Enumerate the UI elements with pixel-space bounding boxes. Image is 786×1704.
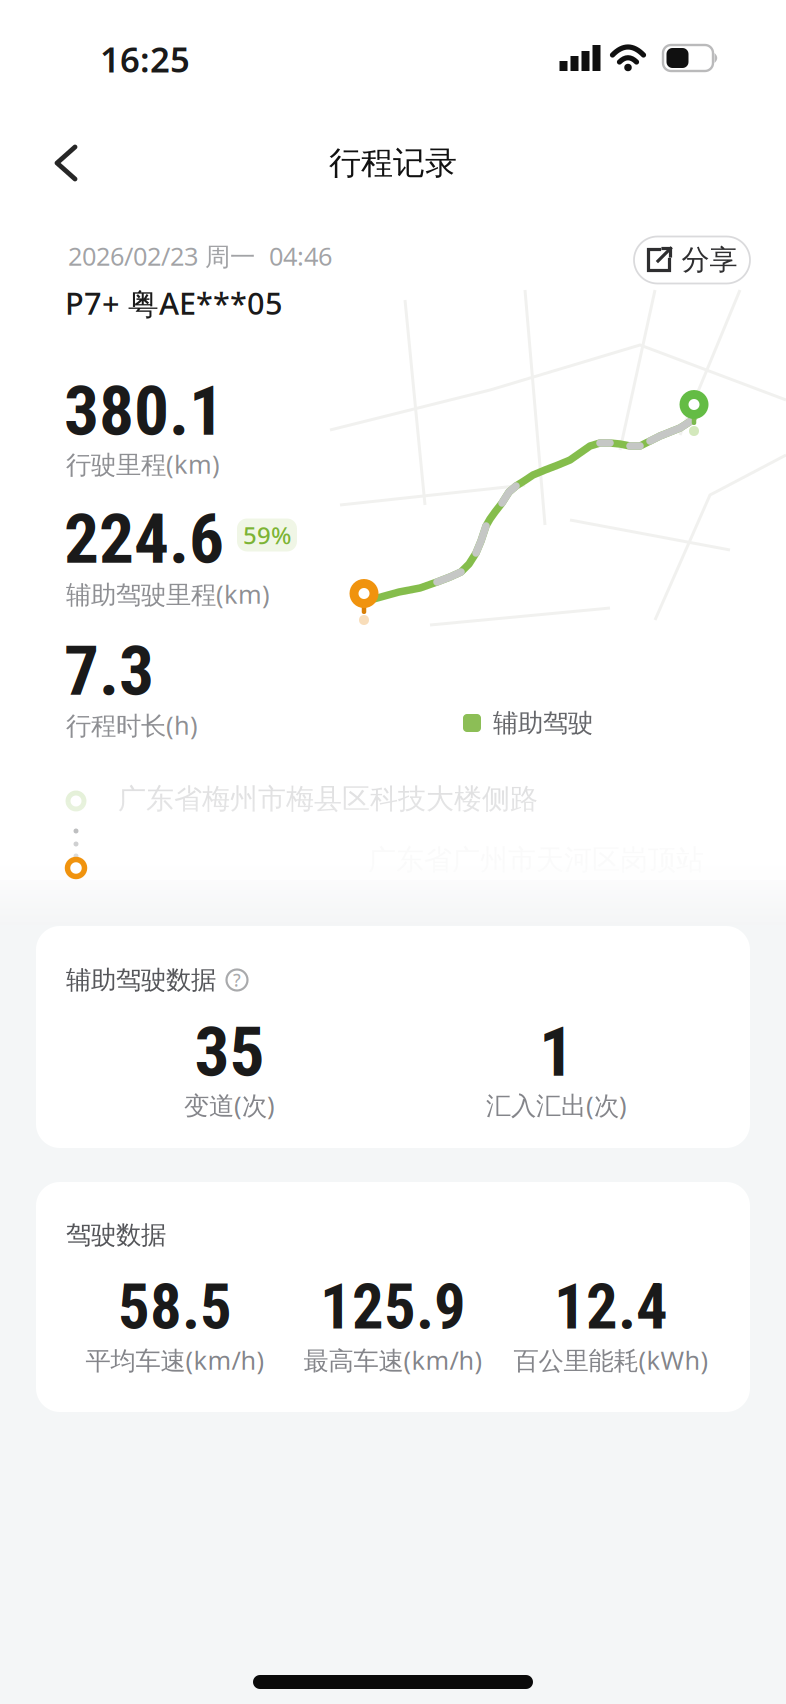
- staticText: 380.1: [64, 370, 224, 452]
- staticText: 224.6: [64, 498, 224, 580]
- staticText: ?: [233, 968, 241, 991]
- staticText: 2026/02/23 周一 04:46: [68, 239, 332, 273]
- staticText: 汇入汇出(次): [486, 1088, 627, 1122]
- staticText: 35: [194, 1011, 264, 1093]
- staticText: 变道(次): [184, 1088, 275, 1122]
- staticText: 最高车速(km/h): [303, 1343, 482, 1377]
- staticText: 平均车速(km/h): [85, 1343, 264, 1377]
- staticText: 12.4: [554, 1270, 668, 1344]
- staticText: 辅助驾驶数据: [66, 964, 216, 995]
- button[interactable]: 说明: [226, 969, 248, 991]
- button[interactable]: Back: [39, 130, 93, 196]
- staticText: 行程时长(h): [66, 708, 198, 742]
- staticText: 百公里能耗(kWh): [513, 1343, 708, 1377]
- staticText: 辅助驾驶: [493, 707, 593, 738]
- staticText: 分享: [681, 243, 737, 277]
- staticText: 广东省梅州市梅县区科技大楼侧路: [118, 782, 538, 816]
- staticText: 行驶里程(km): [66, 447, 220, 481]
- staticText: 59%: [243, 519, 291, 551]
- staticText: 58.5: [118, 1270, 232, 1344]
- staticText: 驾驶数据: [66, 1219, 166, 1250]
- staticText: P7+ 粤AE***05: [65, 283, 283, 323]
- staticText: 行程记录: [329, 143, 457, 183]
- button[interactable]: 分享: [634, 236, 750, 283]
- staticText: 125.9: [320, 1270, 466, 1344]
- staticText: 1: [539, 1011, 574, 1093]
- staticText: 辅助驾驶里程(km): [66, 577, 270, 611]
- staticText: 7.3: [64, 630, 154, 712]
- staticText: 16:25: [100, 36, 190, 82]
